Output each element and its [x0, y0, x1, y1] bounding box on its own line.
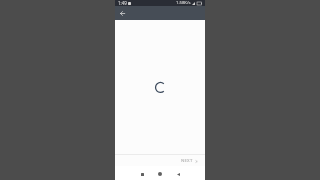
button[interactable]: Back	[172, 168, 184, 180]
button[interactable]: Recent apps	[136, 168, 148, 180]
staticText: 1:49	[118, 0, 127, 6]
button[interactable]: Home	[154, 168, 166, 180]
staticText: NEXT	[181, 158, 193, 164]
button[interactable]: Navigate up	[117, 8, 128, 19]
staticText: 1.58K/s	[176, 0, 191, 6]
button[interactable]: NEXT	[179, 156, 200, 166]
